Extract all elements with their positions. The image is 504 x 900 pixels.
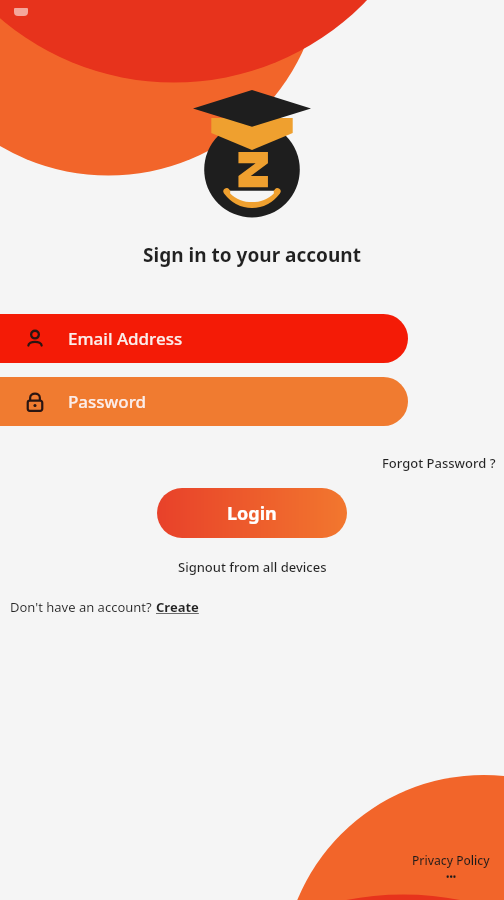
staticText: Forgot Password ? bbox=[382, 454, 496, 472]
button[interactable]: Email address bbox=[0, 314, 504, 363]
staticText: Email Address bbox=[68, 327, 183, 350]
staticText: Password bbox=[68, 390, 147, 413]
staticText: ••• bbox=[446, 870, 457, 882]
staticText: Sign in to your account bbox=[0, 242, 504, 268]
button[interactable]: Signout from all devices bbox=[170, 554, 335, 580]
other: Password bbox=[24, 391, 46, 413]
button[interactable]: Create bbox=[156, 598, 199, 616]
staticText: Login bbox=[227, 501, 277, 526]
staticText: Don't have an account? bbox=[10, 598, 156, 616]
other: Email address bbox=[24, 328, 46, 350]
staticText: Create bbox=[156, 598, 199, 616]
button[interactable]: Forgot Password ? bbox=[374, 450, 504, 476]
staticText: Signout from all devices bbox=[178, 558, 327, 576]
button[interactable]: Password bbox=[0, 377, 504, 426]
button[interactable]: Login bbox=[157, 488, 347, 538]
staticText: Privacy Policy bbox=[412, 852, 490, 868]
button[interactable]: Privacy Policy bbox=[412, 852, 490, 882]
